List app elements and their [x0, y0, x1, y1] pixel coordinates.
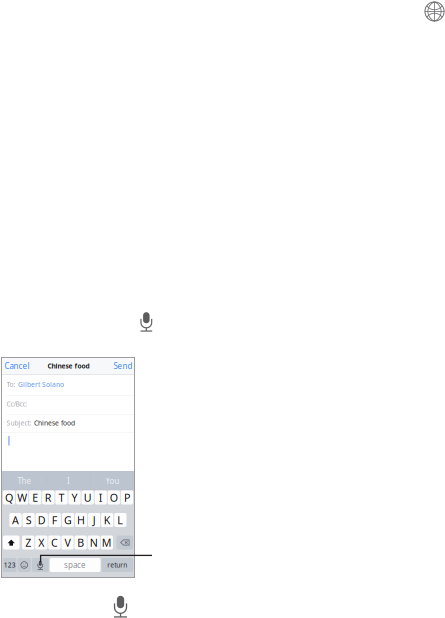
staticText: Y — [71, 490, 77, 505]
staticText: F — [52, 513, 58, 527]
staticText: E — [32, 490, 38, 505]
staticText: U — [84, 490, 92, 505]
staticText: Z — [25, 535, 31, 550]
staticText: return — [107, 561, 127, 569]
staticText: I — [99, 490, 103, 505]
staticText: V — [64, 535, 70, 550]
staticText: M — [102, 535, 112, 550]
staticText: N — [90, 535, 98, 550]
staticText: P — [124, 490, 130, 505]
staticText: A — [12, 513, 19, 527]
staticText: Chinese food — [47, 362, 89, 370]
staticText: Chinese food — [34, 419, 75, 427]
staticText: 123 — [4, 561, 16, 569]
staticText: To: — [6, 380, 15, 389]
button[interactable]: Dictation — [32, 558, 49, 572]
staticText: C — [51, 535, 58, 550]
staticText: S — [26, 513, 32, 527]
staticText: R — [45, 490, 52, 505]
staticText: L — [117, 513, 123, 527]
staticText: space — [64, 560, 86, 570]
staticText: K — [104, 513, 111, 527]
staticText: D — [38, 513, 46, 527]
staticText: G — [64, 513, 72, 527]
staticText: B — [77, 535, 84, 550]
staticText: H — [77, 513, 85, 527]
staticText: Q — [5, 490, 13, 505]
staticText: W — [17, 490, 27, 505]
staticText: T — [58, 490, 64, 505]
staticText: Send — [113, 361, 132, 371]
staticText: The — [17, 476, 31, 486]
staticText: I — [67, 476, 70, 486]
staticText: Cancel — [4, 361, 29, 371]
staticText: Subject: — [6, 419, 31, 427]
staticText: Gilbert Solano — [18, 380, 64, 389]
staticText: X — [38, 535, 44, 550]
staticText: Cc/Bcc: — [6, 400, 27, 408]
staticText: O — [110, 490, 118, 505]
staticText: J — [93, 513, 96, 527]
staticText: You — [105, 476, 119, 486]
button[interactable]: Language — [423, 0, 444, 21]
